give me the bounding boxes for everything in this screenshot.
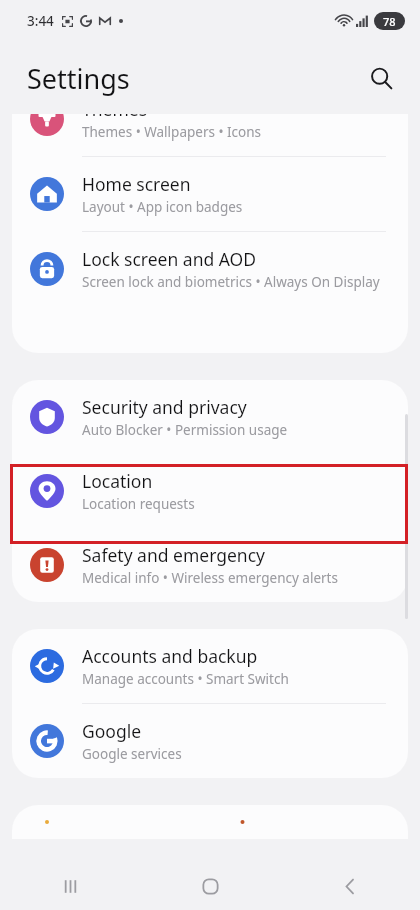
button[interactable]: Home bbox=[140, 862, 280, 910]
staticText: Auto Blocker • Permission usage bbox=[82, 421, 288, 439]
staticText: Location requests bbox=[82, 495, 195, 513]
staticText: 78 bbox=[383, 14, 396, 29]
staticText: Accounts and backup bbox=[82, 644, 258, 668]
staticText: Location bbox=[82, 469, 153, 493]
staticText: Google services bbox=[82, 745, 182, 763]
button[interactable]: Location bbox=[12, 454, 408, 528]
button[interactable]: Back bbox=[280, 862, 420, 910]
button[interactable]: Recents bbox=[0, 862, 140, 910]
button[interactable]: Google bbox=[12, 704, 408, 778]
staticText: Layout • App icon badges bbox=[82, 198, 243, 216]
staticText: Google bbox=[82, 719, 142, 743]
staticText: Safety and emergency bbox=[82, 543, 265, 567]
staticText: Themes bbox=[82, 114, 148, 121]
button[interactable]: Security and privacy bbox=[12, 380, 408, 454]
staticText: Settings bbox=[27, 60, 130, 97]
button[interactable]: Themes bbox=[12, 114, 408, 156]
button[interactable]: Safety and emergency bbox=[12, 528, 408, 602]
staticText: Home screen bbox=[82, 172, 191, 196]
button[interactable]: Lock screen and AOD bbox=[12, 232, 408, 306]
button[interactable]: Home screen bbox=[12, 157, 408, 231]
button[interactable]: Advanced features bbox=[12, 805, 408, 839]
staticText: Screen lock and biometrics • Always On D… bbox=[82, 273, 380, 291]
staticText: Themes • Wallpapers • Icons bbox=[82, 123, 262, 141]
staticText: Manage accounts • Smart Switch bbox=[82, 670, 289, 688]
button[interactable]: Search bbox=[359, 56, 403, 100]
staticText: Medical info • Wireless emergency alerts bbox=[82, 569, 338, 587]
staticText: 3:44 bbox=[27, 12, 54, 30]
staticText: Security and privacy bbox=[82, 395, 247, 419]
button[interactable]: Accounts and backup bbox=[12, 629, 408, 703]
staticText: Lock screen and AOD bbox=[82, 247, 257, 271]
